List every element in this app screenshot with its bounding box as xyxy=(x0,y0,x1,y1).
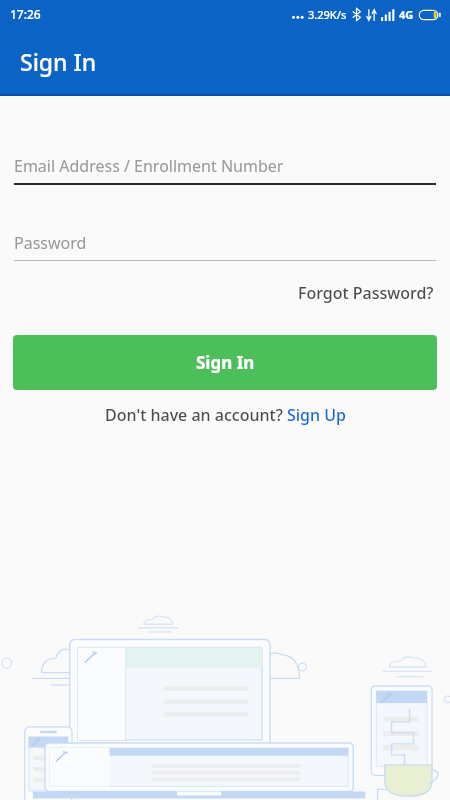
button[interactable]: Sign In xyxy=(13,335,437,390)
button[interactable]: Password xyxy=(14,228,436,263)
staticText: 4G xyxy=(399,7,414,22)
button[interactable]: Don't have an account? Sign Up xyxy=(101,402,350,428)
staticText: Sign In xyxy=(196,351,255,374)
staticText: 17:26 xyxy=(10,6,41,22)
staticText: Sign In xyxy=(20,46,97,77)
staticText: Forgot Password? xyxy=(298,282,434,304)
staticText: Password xyxy=(14,232,87,254)
staticText: Email Address / Enrollment Number xyxy=(14,155,284,177)
button[interactable]: Email Address / Enrollment Number xyxy=(14,151,436,186)
button[interactable]: Forgot Password? xyxy=(296,279,436,307)
staticText: Don't have an account? Sign Up xyxy=(105,404,346,426)
staticText: 3.29K/s xyxy=(308,7,347,22)
